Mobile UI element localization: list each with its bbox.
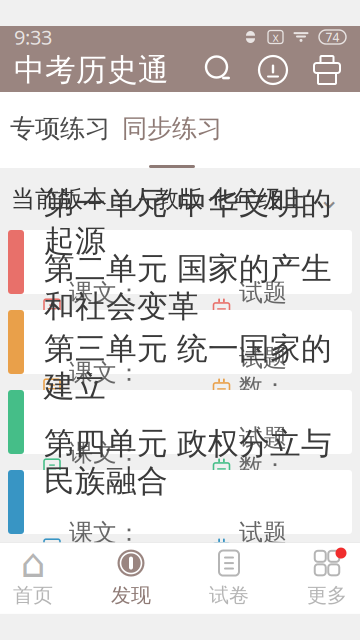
staticText: 课文：8 — [69, 438, 141, 499]
staticText: 当前版本：人教版 七年级上 — [11, 184, 306, 214]
button[interactable]: 发现 — [86, 543, 176, 614]
staticText: 课文：6 — [69, 358, 141, 419]
staticText: 发现 — [111, 583, 151, 608]
staticText: 9:33 — [14, 24, 52, 50]
staticText: 第一单元 中华文明的起源 — [44, 185, 332, 260]
staticText: ⌄ — [318, 184, 340, 214]
staticText: x — [272, 29, 278, 45]
button[interactable]: 更多 — [282, 543, 360, 614]
staticText: 试卷 — [209, 583, 249, 608]
staticText: 试题数：999 — [239, 518, 329, 579]
button[interactable]: 同步练习 — [116, 92, 228, 168]
button[interactable]: 专项练习 — [4, 92, 116, 168]
button[interactable]: ⌂ — [0, 543, 78, 614]
staticText: 第三单元 统一国家的建立 — [44, 330, 332, 405]
staticText: 首页 — [13, 583, 53, 608]
button[interactable]: Search — [192, 48, 246, 92]
staticText: 第二单元 国家的产生和社会变革 — [44, 250, 332, 325]
button[interactable]: 第三单元 统一国家的建立 — [0, 390, 360, 454]
button[interactable]: 当前版本：人教版 七年级上 — [0, 168, 360, 230]
staticText: 试题数：1195 — [239, 343, 295, 434]
button[interactable]: 第二单元 国家的产生和社会变革 — [0, 310, 360, 374]
button[interactable]: 第四单元 政权分立与民族融合 — [0, 470, 360, 534]
staticText: 更多 — [307, 583, 347, 608]
button[interactable]: 试卷 — [184, 543, 274, 614]
staticText: ⌂ — [20, 540, 45, 586]
staticText: 74 — [325, 29, 339, 45]
staticText: 同步练习 — [122, 113, 222, 144]
button[interactable]: 第一单元 中华文明的起源 — [0, 230, 360, 294]
staticText: 试题数：1573 — [239, 423, 295, 514]
staticText: 课文：5 — [69, 518, 141, 579]
staticText: 试题数：599 — [239, 278, 329, 339]
button[interactable]: Downloads — [246, 48, 300, 92]
staticText: 第四单元 政权分立与民族融合 — [44, 425, 332, 500]
staticText: 专项练习 — [10, 113, 110, 144]
staticText: 中考历史通 — [14, 51, 169, 89]
button[interactable]: Print — [300, 48, 354, 92]
staticText: 课文：3 — [69, 278, 141, 339]
